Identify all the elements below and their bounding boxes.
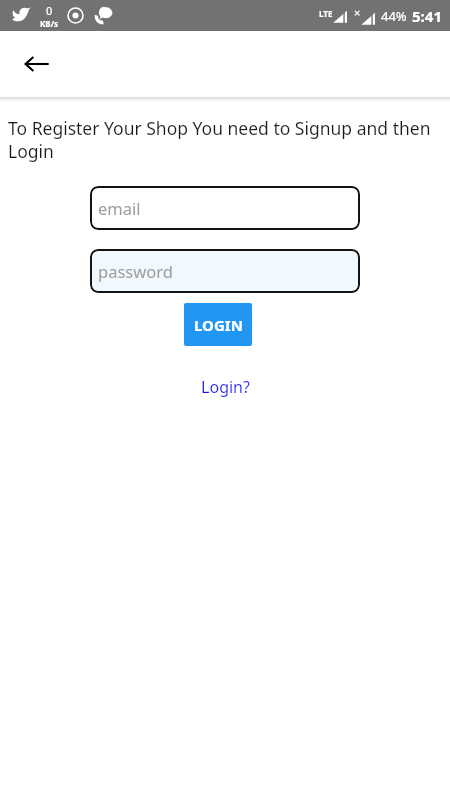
staticText: 5:41 [412,6,442,26]
button[interactable]: password [90,249,360,293]
staticText: LTE [319,8,333,19]
button[interactable]: Back [19,46,55,82]
staticText: 44% [381,7,407,25]
staticText: email [98,197,141,219]
button[interactable]: Login? [195,374,256,400]
staticText: 0 [46,3,53,18]
staticText: KB/s [40,18,58,29]
button[interactable]: email [90,186,360,230]
button[interactable]: LOGIN [184,303,252,346]
staticText: × [354,5,361,20]
staticText: password [98,260,173,282]
staticText: LOGIN [194,315,243,335]
staticText: To Register Your Shop You need to Signup… [8,116,436,163]
